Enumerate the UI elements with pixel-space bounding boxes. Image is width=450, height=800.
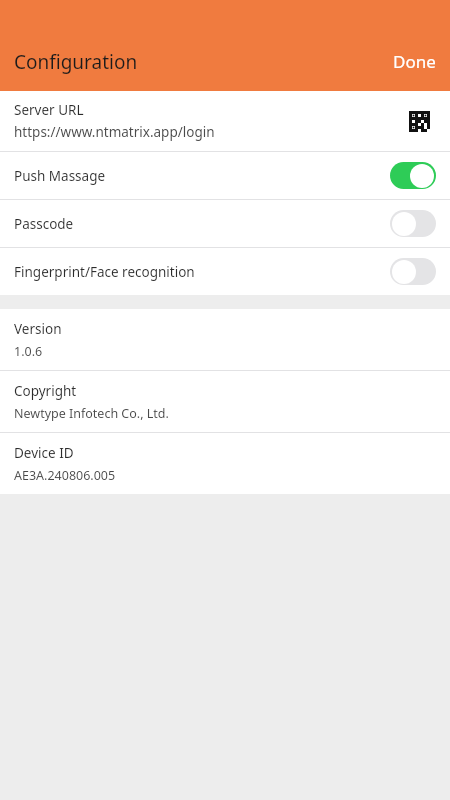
button[interactable]: Done	[379, 44, 450, 79]
staticText: Server URL	[14, 101, 84, 119]
button[interactable]: Device ID	[0, 433, 450, 494]
button[interactable]: Server URL	[0, 91, 450, 151]
staticText: Version	[14, 320, 62, 338]
button[interactable]: Fingerprint/Face recognition	[0, 248, 450, 295]
staticText: https://www.ntmatrix.app/login	[14, 123, 215, 141]
button[interactable]: Scan QR code	[402, 104, 436, 138]
button[interactable]: Copyright	[0, 371, 450, 432]
staticText: Passcode	[14, 215, 390, 233]
staticText: Push Massage	[14, 167, 390, 185]
button[interactable]: On	[390, 162, 436, 189]
staticText: AE3A.240806.005	[14, 467, 116, 484]
staticText: Copyright	[14, 382, 77, 400]
button[interactable]: Off	[390, 258, 436, 285]
staticText: 1.0.6	[14, 343, 43, 360]
button[interactable]: Push Massage	[0, 152, 450, 199]
staticText: Device ID	[14, 444, 74, 462]
staticText: Fingerprint/Face recognition	[14, 263, 390, 281]
staticText: Done	[393, 50, 436, 73]
staticText: Newtype Infotech Co., Ltd.	[14, 405, 169, 422]
staticText: Configuration	[14, 49, 138, 75]
button[interactable]: Passcode	[0, 200, 450, 247]
button[interactable]: Off	[390, 210, 436, 237]
button[interactable]: Version	[0, 309, 450, 370]
